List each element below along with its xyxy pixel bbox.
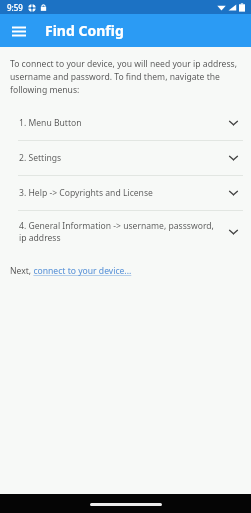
staticText: 3. Help -> Copyrights and License bbox=[19, 187, 217, 199]
button[interactable]: 3. Help -> Copyrights and License bbox=[0, 176, 251, 210]
staticText: Find Config bbox=[45, 21, 124, 40]
staticText: Next, connect to your device... bbox=[10, 265, 132, 277]
staticText: 2. Settings bbox=[19, 152, 217, 164]
button[interactable]: Open navigation menu bbox=[7, 19, 31, 43]
button[interactable]: 1. Menu Button bbox=[0, 106, 251, 140]
button[interactable]: Next, connect to your device... bbox=[10, 265, 132, 277]
button[interactable]: 2. Settings bbox=[0, 141, 251, 175]
staticText: 9:59 bbox=[7, 2, 23, 13]
staticText: 1. Menu Button bbox=[19, 117, 217, 129]
button[interactable]: 4. General Information -> username, pass… bbox=[0, 211, 251, 253]
staticText: To connect to your device, you will need… bbox=[10, 58, 239, 96]
staticText: 4. General Information -> username, pass… bbox=[19, 220, 217, 244]
